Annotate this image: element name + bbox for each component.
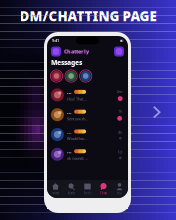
- button[interactable]: alex_thunder: [47, 105, 128, 125]
- button[interactable]: Story: [65, 69, 78, 82]
- staticText: Chats: [100, 191, 107, 195]
- button[interactable]: New message: [114, 46, 124, 56]
- button[interactable]: sofia_rose: [47, 85, 128, 105]
- staticText: Hey! That was such a fun time: [67, 96, 88, 101]
- staticText: ▮▮▯: [120, 39, 123, 42]
- staticText: ok sounds good: [67, 156, 88, 161]
- button[interactable]: Chats: [96, 183, 111, 195]
- staticText: sofia_rose: [67, 88, 72, 95]
- staticText: liam.codes: [67, 148, 72, 155]
- staticText: Reels: [83, 191, 91, 195]
- button[interactable]: You: [112, 183, 127, 195]
- staticText: alex_thunder: [67, 108, 72, 115]
- button[interactable]: Story: [50, 69, 63, 82]
- staticText: Messages: [51, 58, 82, 67]
- staticText: You: [117, 191, 122, 195]
- staticText: 1h: [118, 109, 122, 114]
- staticText: 9:41: [52, 38, 59, 43]
- button[interactable]: Search: [64, 183, 79, 195]
- staticText: Home: [51, 191, 59, 195]
- button[interactable]: Reels: [80, 183, 95, 195]
- staticText: DM/CHATTING PAGE: [19, 7, 156, 25]
- button[interactable]: liam.codes: [47, 144, 128, 164]
- staticText: mia_blake: [67, 128, 72, 135]
- staticText: 3h: [118, 129, 122, 135]
- staticText: 2m: [117, 89, 123, 94]
- staticText: Chatterly: [64, 48, 89, 55]
- button[interactable]: Next: [152, 105, 162, 120]
- button[interactable]: mia_blake: [47, 125, 128, 144]
- staticText: Search: [67, 191, 75, 195]
- staticText: Sent you the design files: [67, 116, 88, 121]
- button[interactable]: Chatterly: [51, 46, 61, 56]
- staticText: Would love to catch up tonight!: [67, 136, 88, 141]
- staticText: 1d: [118, 149, 122, 155]
- button[interactable]: Story: [79, 69, 92, 82]
- button[interactable]: Home: [48, 183, 63, 195]
